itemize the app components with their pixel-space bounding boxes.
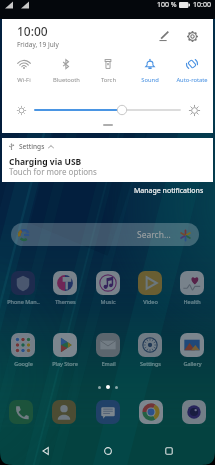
staticText: Torch <box>101 76 116 84</box>
staticText: Music <box>100 298 116 305</box>
staticText: Gallery <box>183 360 202 367</box>
staticText: Touch for more options <box>9 166 97 177</box>
button[interactable]: Settings <box>2 138 213 182</box>
button[interactable]: Music <box>91 266 125 305</box>
button[interactable]: Settings <box>133 328 167 367</box>
staticText: Google <box>14 360 33 367</box>
staticText: Email <box>101 360 116 367</box>
button[interactable]: Manage notifications <box>132 185 206 197</box>
button[interactable]: Messages <box>96 400 120 424</box>
button[interactable]: Auto-rotate <box>171 58 213 84</box>
button[interactable]: Wi-Fi <box>2 58 45 84</box>
button[interactable]: Search... <box>11 223 199 246</box>
staticText: Settings <box>19 142 45 151</box>
staticText: Sound <box>141 76 159 84</box>
staticText: Health <box>183 298 201 305</box>
button[interactable]: Gallery <box>175 328 209 367</box>
button[interactable]: Torch <box>87 58 129 84</box>
button[interactable]: Play Store <box>48 328 82 367</box>
staticText: Bluetooth <box>53 76 80 84</box>
staticText: Themes <box>55 298 76 305</box>
button[interactable]: Email <box>91 328 125 367</box>
button[interactable]: Bluetooth <box>45 58 87 84</box>
staticText: Auto-rotate <box>176 76 208 84</box>
button[interactable]: Back <box>31 437 61 465</box>
staticText: Friday, 19 July <box>17 40 59 49</box>
staticText: Phone Man.. <box>7 298 40 305</box>
button[interactable]: Edit quick settings <box>154 26 174 46</box>
button[interactable]: Camera <box>182 400 206 424</box>
button[interactable]: Health <box>175 266 209 305</box>
button[interactable]: Brightness <box>35 103 180 117</box>
button[interactable]: Recents <box>154 437 184 465</box>
staticText: Wi-Fi <box>17 76 31 84</box>
button[interactable]: Phone Man.. <box>6 266 40 305</box>
staticText: 10:00 <box>193 0 211 10</box>
button[interactable]: Chrome <box>139 400 163 424</box>
staticText: Play Store <box>52 360 78 367</box>
staticText: Settings <box>140 360 161 367</box>
staticText: Charging via USB <box>9 156 82 168</box>
staticText: 100 % <box>157 0 177 10</box>
button[interactable]: Video <box>133 266 167 305</box>
button[interactable]: Home <box>93 437 123 465</box>
button[interactable]: Contacts <box>52 400 76 424</box>
staticText: Manage notifications <box>134 186 204 196</box>
button[interactable]: Sound <box>129 58 171 84</box>
staticText: Search... <box>137 229 171 241</box>
button[interactable]: Google <box>6 328 40 367</box>
staticText: Video <box>143 298 158 305</box>
button[interactable]: Phone <box>9 400 33 424</box>
button[interactable]: Settings <box>182 26 202 46</box>
staticText: 10:00 <box>17 23 48 39</box>
button[interactable]: Themes <box>48 266 82 305</box>
